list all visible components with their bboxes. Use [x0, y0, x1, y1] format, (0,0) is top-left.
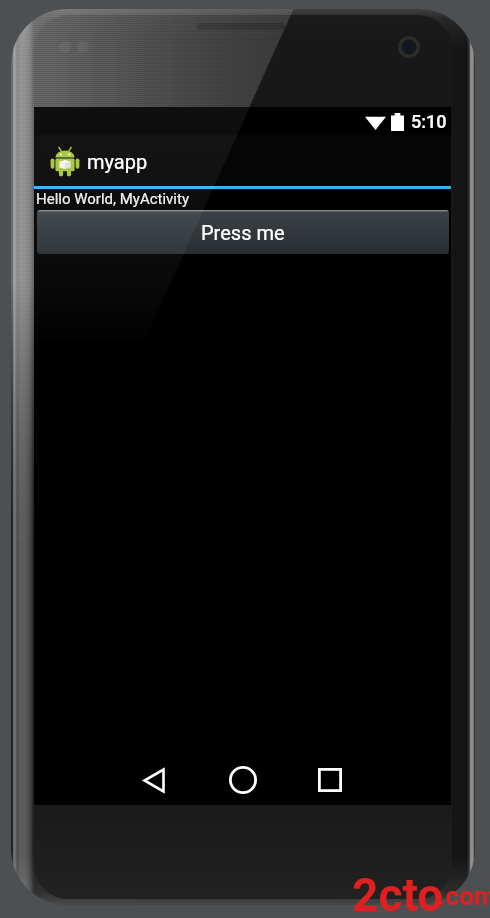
staticText: Press me — [201, 221, 285, 244]
button[interactable]: Home — [209, 755, 277, 805]
button[interactable]: Press me — [37, 210, 449, 254]
button[interactable]: Recents — [296, 755, 364, 805]
staticText: Hello World, MyActivity — [36, 190, 190, 208]
staticText: 2cto — [352, 868, 444, 918]
staticText: .com — [438, 881, 490, 911]
button[interactable]: Back — [120, 755, 188, 805]
staticText: 5:10 — [411, 111, 447, 132]
staticText: myapp — [87, 150, 148, 173]
